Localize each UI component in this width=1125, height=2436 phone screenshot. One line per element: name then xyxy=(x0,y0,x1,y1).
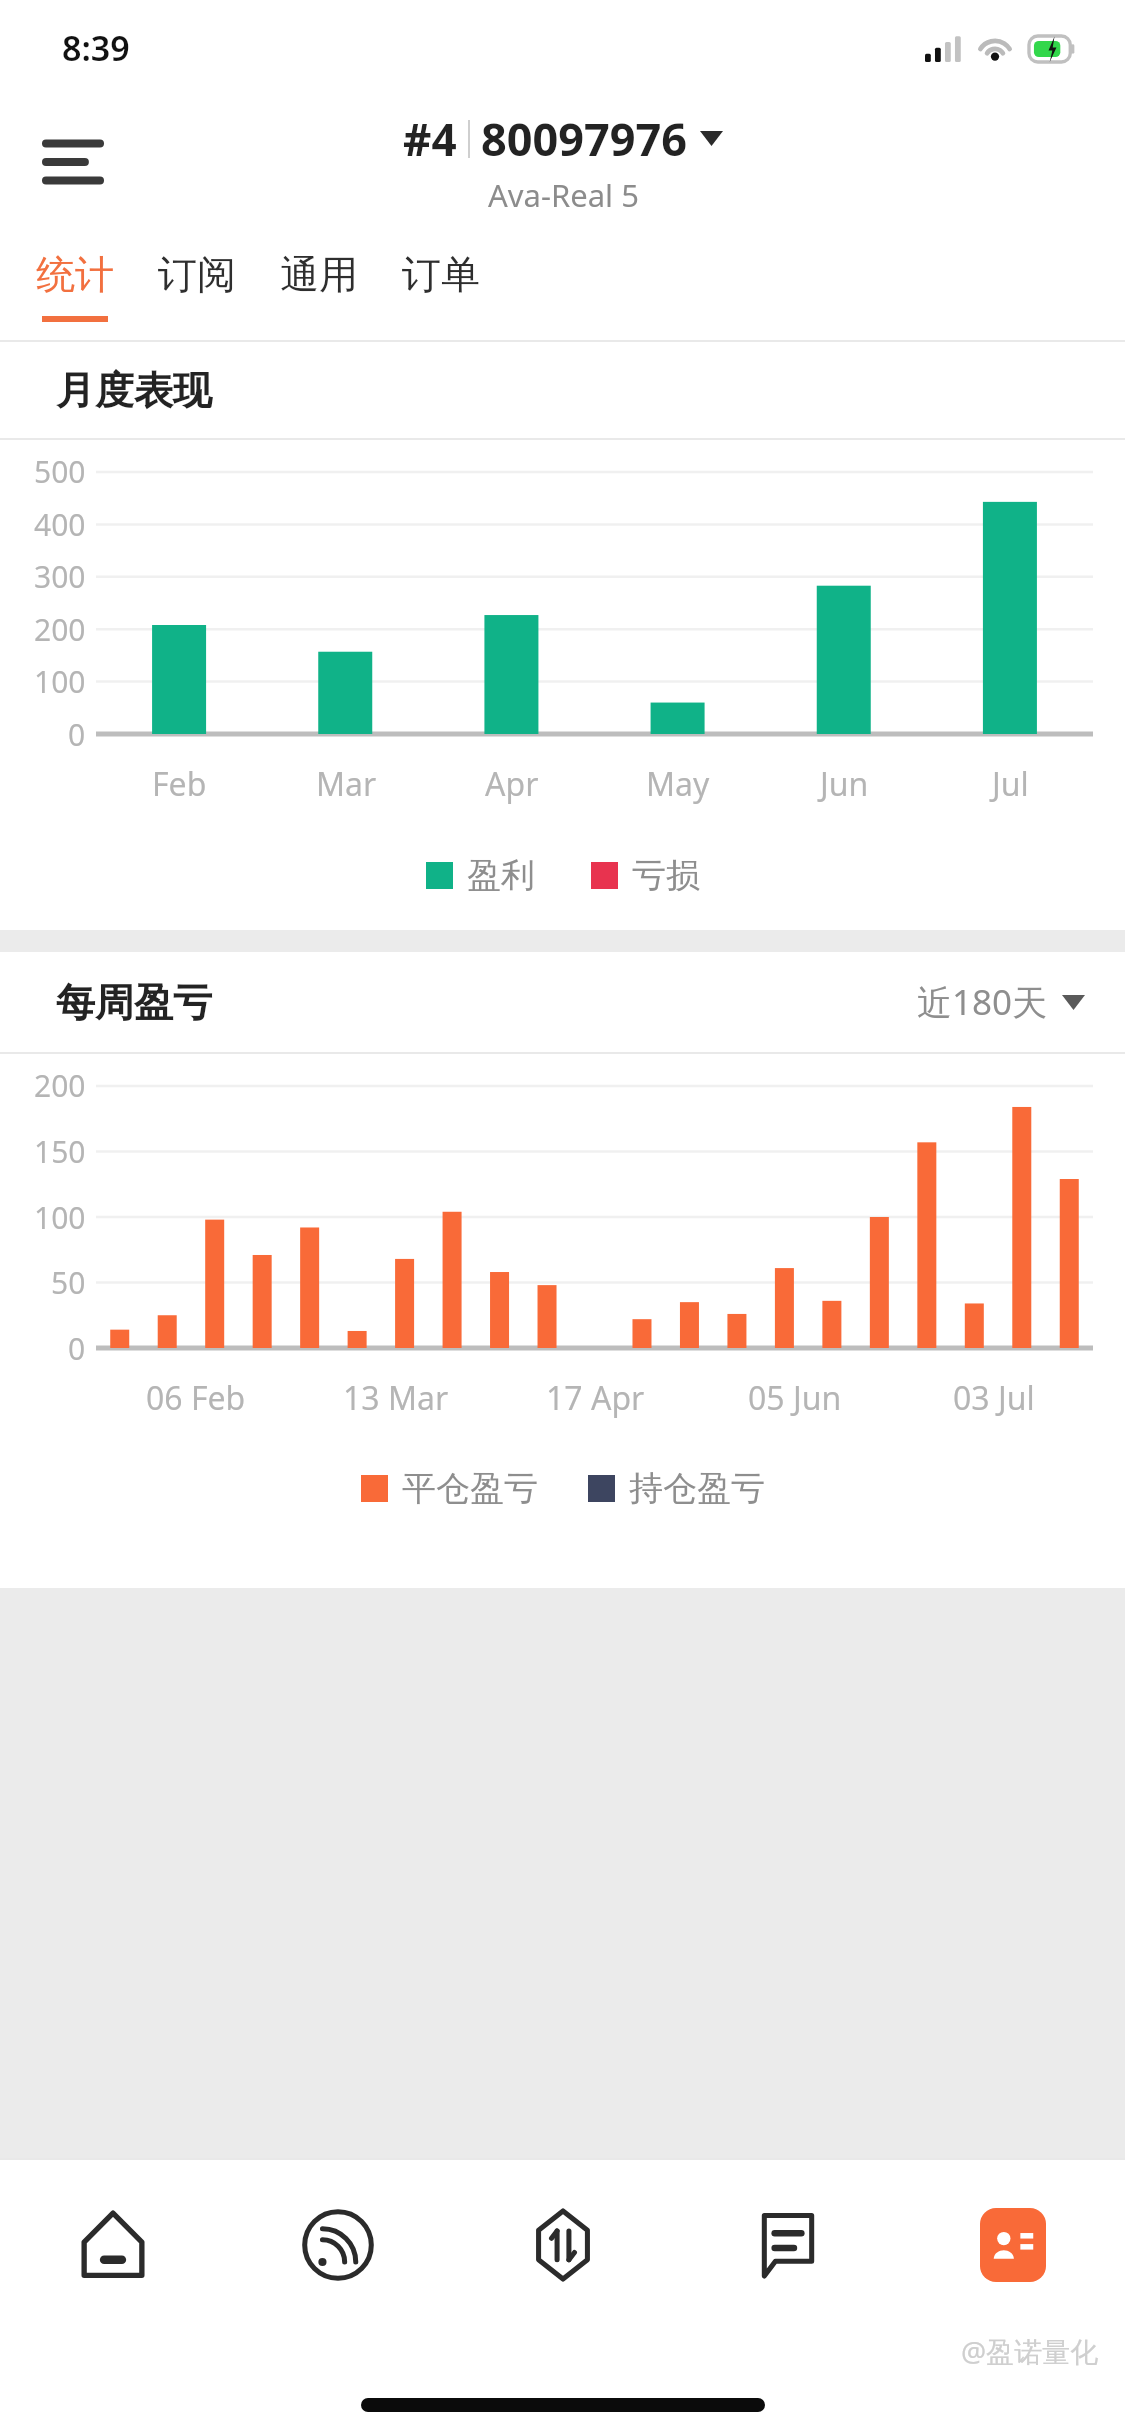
button[interactable]: Home xyxy=(0,2160,225,2330)
staticText: 每周盈亏 xyxy=(56,978,212,1027)
staticText: 200 xyxy=(34,1065,86,1106)
button[interactable]: 订单 xyxy=(380,228,502,340)
button[interactable]: 平仓盈亏 xyxy=(361,1467,538,1510)
staticText: Feb xyxy=(152,762,207,806)
button[interactable]: Menu xyxy=(26,115,120,209)
staticText: 17 Apr xyxy=(546,1376,645,1420)
button[interactable]: 近180天 xyxy=(917,978,1085,1026)
staticText: 0 xyxy=(68,1328,86,1369)
staticText: 400 xyxy=(34,504,86,545)
staticText: 100 xyxy=(34,661,86,702)
staticText: Apr xyxy=(485,762,539,806)
staticText: Jul xyxy=(992,762,1029,806)
staticText: 80097976 xyxy=(481,108,687,169)
staticText: 持仓盈亏 xyxy=(629,1467,765,1510)
button[interactable]: 通用 xyxy=(258,228,380,340)
staticText: Jun xyxy=(820,762,869,806)
staticText: 300 xyxy=(34,556,86,597)
staticText: Ava-Real 5 xyxy=(488,174,639,216)
staticText: 8:39 xyxy=(62,25,130,71)
button[interactable]: 统计 xyxy=(14,228,136,340)
staticText: 盈利 xyxy=(467,854,535,897)
button[interactable]: 亏损 xyxy=(591,854,700,897)
button[interactable]: 订阅 xyxy=(136,228,258,340)
staticText: 13 Mar xyxy=(343,1376,449,1420)
button[interactable]: 持仓盈亏 xyxy=(588,1467,765,1510)
button[interactable]: Signals xyxy=(225,2160,450,2330)
button[interactable]: Profile xyxy=(900,2160,1125,2330)
staticText: 订单 xyxy=(402,250,480,299)
staticText: 通用 xyxy=(280,250,358,299)
staticText: 03 Jul xyxy=(953,1376,1035,1420)
staticText: 06 Feb xyxy=(146,1376,246,1420)
staticText: Mar xyxy=(316,762,377,806)
staticText: 50 xyxy=(51,1262,86,1303)
staticText: 200 xyxy=(34,609,86,650)
staticText: 150 xyxy=(34,1131,86,1172)
staticText: #4 xyxy=(403,109,457,169)
button[interactable]: Messages xyxy=(675,2160,900,2330)
staticText: 100 xyxy=(34,1197,86,1238)
staticText: 500 xyxy=(34,451,86,492)
staticText: May xyxy=(646,762,710,806)
staticText: 订阅 xyxy=(158,250,236,299)
button[interactable]: #4 xyxy=(403,108,723,216)
staticText: 05 Jun xyxy=(748,1376,842,1420)
staticText: 统计 xyxy=(36,250,114,299)
staticText: 亏损 xyxy=(632,854,700,897)
staticText: 平仓盈亏 xyxy=(402,1467,538,1510)
staticText: 近180天 xyxy=(917,978,1048,1026)
staticText: 0 xyxy=(68,714,86,755)
staticText: 月度表现 xyxy=(56,366,212,415)
staticText: @盈诺量化 xyxy=(961,2332,1099,2370)
button[interactable]: 盈利 xyxy=(426,854,535,897)
button[interactable]: Trade xyxy=(450,2160,675,2330)
